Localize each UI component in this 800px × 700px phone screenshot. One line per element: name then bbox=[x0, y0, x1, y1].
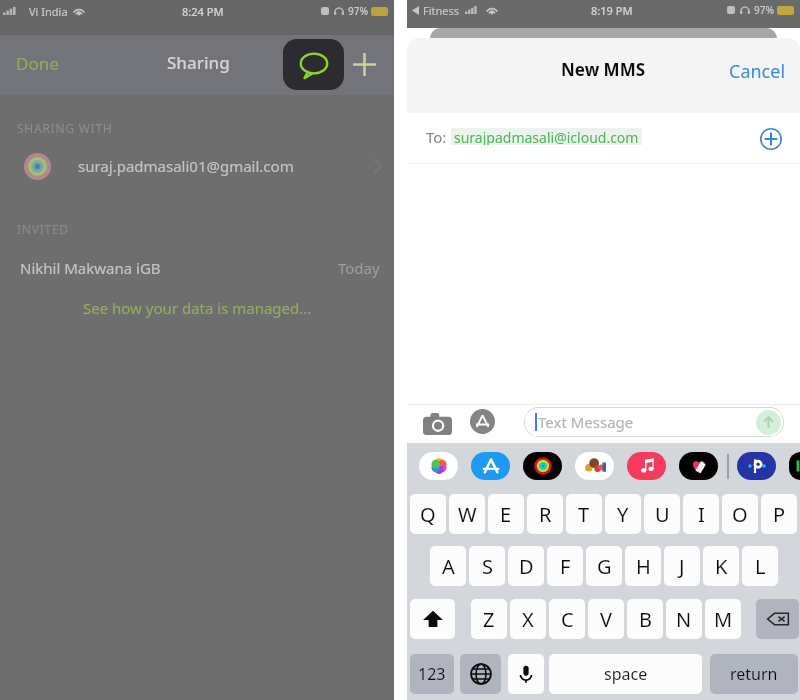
button[interactable]: App bbox=[679, 452, 718, 480]
button[interactable]: S bbox=[469, 546, 505, 586]
button[interactable]: Dictate bbox=[508, 654, 544, 694]
staticText: F bbox=[560, 553, 571, 580]
button[interactable]: App bbox=[523, 452, 562, 480]
staticText: SHARING WITH bbox=[17, 120, 113, 136]
button[interactable]: H bbox=[625, 546, 661, 586]
button[interactable]: App bbox=[737, 452, 776, 480]
staticText: K bbox=[715, 553, 728, 580]
button[interactable]: X bbox=[510, 599, 546, 639]
button[interactable]: App bbox=[471, 452, 510, 480]
staticText: W bbox=[458, 501, 477, 528]
staticText: R bbox=[539, 501, 552, 528]
button[interactable]: Cancel bbox=[723, 53, 792, 90]
staticText: T bbox=[578, 501, 590, 528]
button[interactable]: App bbox=[419, 452, 458, 480]
button[interactable]: App bbox=[575, 452, 614, 480]
button[interactable]: space bbox=[549, 654, 702, 694]
staticText: New MMS bbox=[561, 58, 646, 81]
staticText: E bbox=[500, 501, 512, 528]
button[interactable]: C bbox=[549, 599, 585, 639]
staticText: U bbox=[655, 501, 670, 528]
staticText: Cancel bbox=[729, 59, 786, 84]
button[interactable]: Shift bbox=[410, 599, 455, 639]
button[interactable]: Add contact bbox=[758, 126, 783, 151]
staticText: Today bbox=[338, 258, 380, 278]
staticText: P bbox=[773, 501, 786, 528]
button[interactable]: G bbox=[586, 546, 622, 586]
button[interactable]: App bbox=[789, 452, 800, 480]
staticText: 123 bbox=[418, 663, 446, 685]
staticText: V bbox=[600, 606, 612, 633]
button[interactable]: B bbox=[627, 599, 663, 639]
staticText: H bbox=[636, 553, 651, 580]
staticText: return bbox=[730, 663, 778, 685]
staticText: See how your data is managed... bbox=[83, 298, 312, 318]
button[interactable]: Delete bbox=[756, 599, 799, 639]
button[interactable]: U bbox=[644, 494, 680, 534]
staticText: 97% bbox=[754, 3, 774, 17]
staticText: S bbox=[482, 553, 493, 580]
button[interactable]: Y bbox=[605, 494, 641, 534]
button[interactable]: Nikhil Makwana iGB bbox=[0, 253, 394, 283]
button[interactable]: 123 bbox=[410, 654, 454, 694]
staticText: space bbox=[604, 663, 648, 685]
button[interactable]: I bbox=[683, 494, 719, 534]
staticText: 97% bbox=[348, 4, 368, 18]
staticText: Fitness bbox=[423, 3, 460, 18]
button[interactable]: N bbox=[666, 599, 702, 639]
button[interactable]: Add bbox=[349, 49, 379, 79]
button[interactable]: return bbox=[710, 654, 798, 694]
button[interactable]: F bbox=[547, 546, 583, 586]
button[interactable]: Message bbox=[283, 39, 344, 90]
staticText: A bbox=[442, 553, 455, 580]
staticText: O bbox=[732, 501, 748, 528]
button[interactable]: App Store bbox=[469, 408, 496, 435]
button[interactable]: J bbox=[664, 546, 700, 586]
button[interactable]: L bbox=[742, 546, 778, 586]
staticText: M bbox=[714, 606, 733, 633]
staticText: J bbox=[679, 553, 685, 580]
button[interactable]: Text Message bbox=[524, 407, 784, 437]
staticText: 8:24 PM bbox=[182, 4, 224, 19]
button[interactable]: Q bbox=[410, 494, 446, 534]
staticText: Text Message bbox=[538, 412, 634, 432]
button[interactable]: Camera bbox=[422, 410, 453, 437]
button[interactable]: App bbox=[627, 452, 666, 480]
staticText: I bbox=[698, 501, 705, 528]
staticText: Q bbox=[420, 501, 436, 528]
button[interactable]: V bbox=[588, 599, 624, 639]
button[interactable]: Done bbox=[12, 48, 63, 79]
staticText: Done bbox=[16, 52, 59, 75]
button[interactable]: O bbox=[722, 494, 758, 534]
button[interactable]: W bbox=[449, 494, 485, 534]
staticText: INVITED bbox=[17, 221, 69, 237]
staticText: suraj.padmasali01@gmail.com bbox=[78, 156, 294, 176]
staticText: Z bbox=[483, 606, 495, 633]
button[interactable]: E bbox=[488, 494, 524, 534]
staticText: Vi India bbox=[29, 4, 68, 19]
staticText: 8:19 PM bbox=[591, 3, 633, 18]
staticText: Sharing bbox=[167, 51, 230, 74]
button[interactable]: P bbox=[761, 494, 797, 534]
button[interactable]: A bbox=[430, 546, 466, 586]
button[interactable]: Z bbox=[471, 599, 507, 639]
staticText: Nikhil Makwana iGB bbox=[20, 258, 161, 278]
staticText: surajpadmasali@icloud.com bbox=[454, 128, 639, 145]
staticText: N bbox=[676, 606, 692, 633]
staticText: C bbox=[561, 606, 574, 633]
button[interactable]: R bbox=[527, 494, 563, 534]
staticText: To: bbox=[426, 127, 447, 147]
button[interactable]: suraj.padmasali01@gmail.com bbox=[0, 144, 394, 188]
button[interactable]: Language bbox=[460, 654, 501, 694]
button[interactable]: surajpadmasali@icloud.com bbox=[454, 128, 639, 145]
staticText: G bbox=[597, 553, 612, 580]
button[interactable]: T bbox=[566, 494, 602, 534]
staticText: Y bbox=[617, 501, 629, 528]
button[interactable]: Send bbox=[756, 410, 781, 435]
button[interactable]: M bbox=[705, 599, 741, 639]
staticText: B bbox=[639, 606, 652, 633]
button[interactable]: K bbox=[703, 546, 739, 586]
button[interactable]: D bbox=[508, 546, 544, 586]
staticText: D bbox=[519, 553, 534, 580]
button[interactable]: See how your data is managed... bbox=[0, 296, 394, 320]
